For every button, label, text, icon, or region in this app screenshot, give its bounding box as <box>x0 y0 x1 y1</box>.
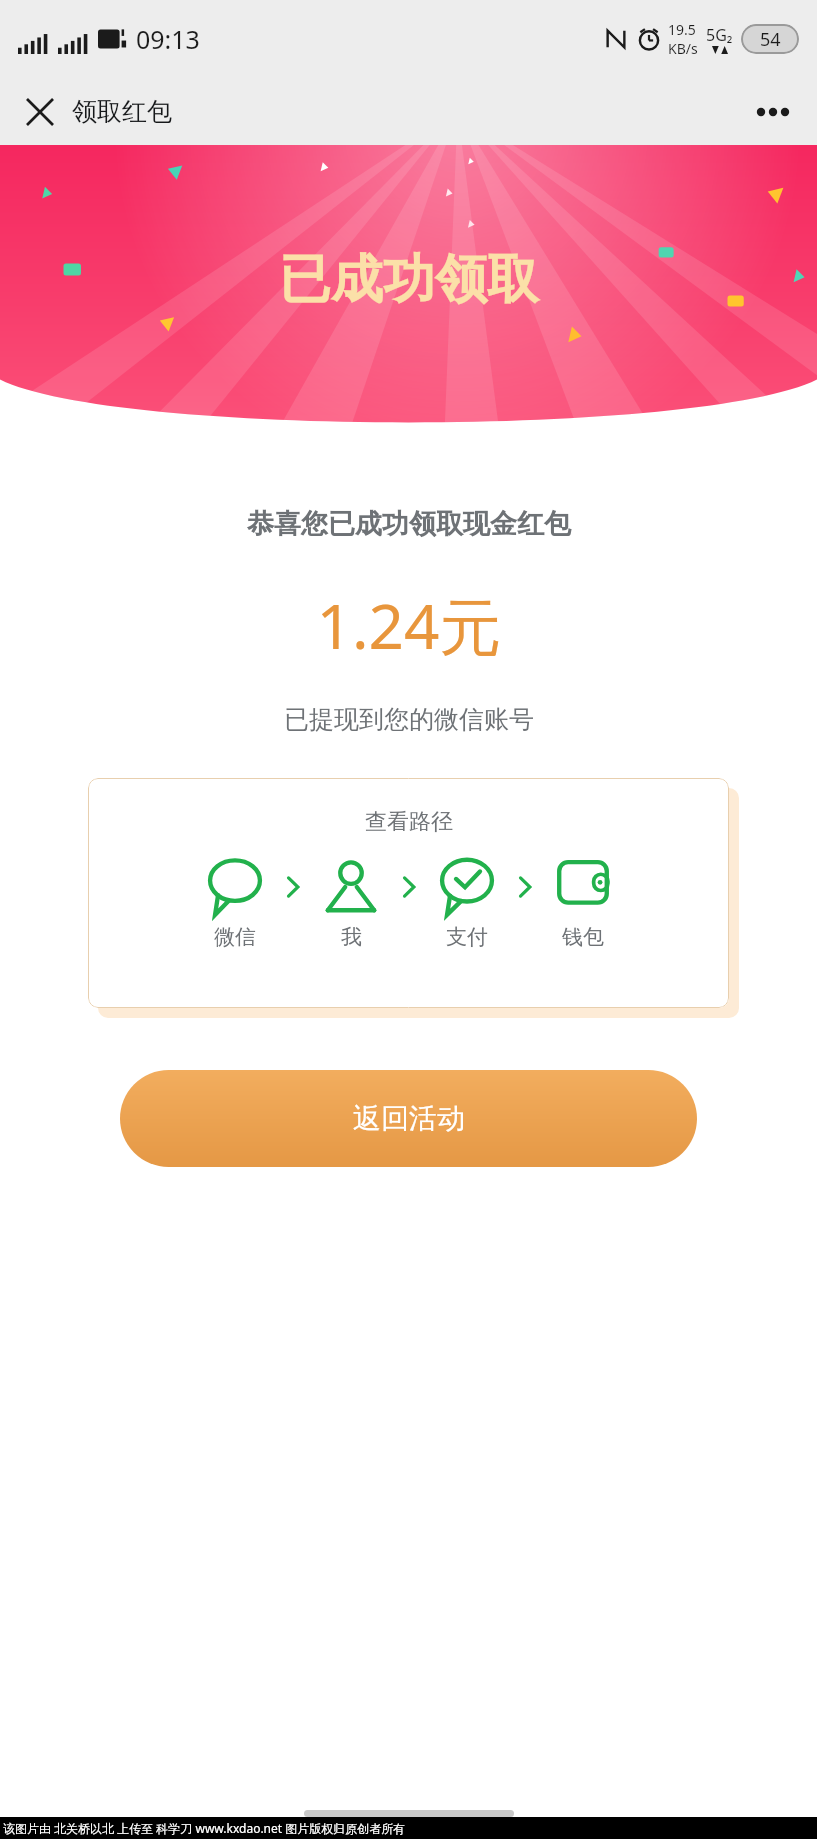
staticText: 查看路径 <box>365 808 453 836</box>
staticText: 该图片由 北关桥以北 上传至 科学刀 www.kxdao.net 图片版权归原创… <box>3 1820 406 1836</box>
staticText: 恭喜您已成功领取现金红包 <box>247 507 571 541</box>
staticText: 已提现到您的微信账号 <box>284 704 534 735</box>
staticText: 5G₂ <box>706 24 733 46</box>
staticText: KB/s <box>668 39 698 58</box>
staticText: 19.5 <box>668 20 696 39</box>
staticText: 09:13 <box>136 22 200 56</box>
staticText: 钱包 <box>562 924 604 950</box>
staticText: 54 <box>760 27 781 52</box>
staticText: 我 <box>341 924 362 950</box>
staticText: 支付 <box>446 924 488 950</box>
staticText: 领取红包 <box>72 96 172 127</box>
staticText: 返回活动 <box>353 1101 465 1136</box>
button[interactable]: Close <box>14 86 66 138</box>
button[interactable]: 支付 <box>424 858 510 950</box>
button[interactable]: 返回活动 <box>120 1070 697 1167</box>
staticText: 已成功领取 <box>279 247 539 313</box>
button[interactable]: More options <box>745 84 801 140</box>
staticText: 1.24元 <box>316 583 502 668</box>
staticText: 微信 <box>214 924 256 950</box>
button[interactable]: 微信 <box>192 858 278 950</box>
button[interactable]: 我 <box>308 858 394 950</box>
button[interactable]: 钱包 <box>540 858 626 950</box>
button[interactable]: 查看路径 <box>88 778 729 1008</box>
